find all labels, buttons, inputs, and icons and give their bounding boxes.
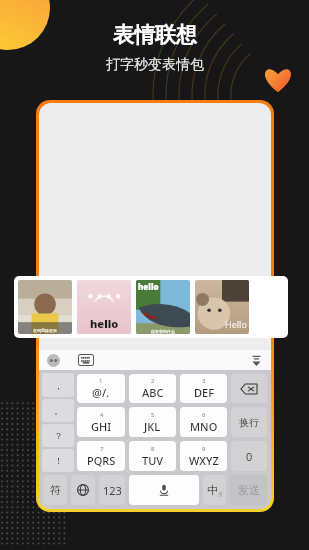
button[interactable]: ，	[42, 373, 74, 397]
button[interactable]: 123	[99, 475, 125, 505]
button[interactable]: Collapse	[250, 354, 263, 367]
staticText: 123	[103, 483, 122, 498]
button[interactable]: 7	[77, 441, 125, 471]
button[interactable]: 4	[77, 407, 125, 437]
staticText: ！	[54, 455, 63, 466]
button[interactable]: 。	[42, 399, 74, 422]
button[interactable]: hello	[136, 280, 190, 334]
staticText: Hello	[225, 318, 247, 330]
button[interactable]: Keyboard	[78, 354, 94, 366]
staticText: @/.	[92, 385, 110, 400]
button[interactable]: Hello	[195, 280, 249, 334]
button[interactable]: Voice	[46, 290, 66, 310]
staticText: PQRS	[87, 453, 116, 468]
staticText: hello	[138, 281, 159, 292]
button[interactable]: Panda	[47, 354, 60, 367]
staticText: 4	[100, 411, 104, 419]
button[interactable]: 6	[180, 407, 227, 437]
staticText: JKL	[144, 419, 161, 434]
staticText: 。	[54, 405, 63, 416]
button[interactable]: 2	[129, 374, 176, 403]
staticText: 中	[207, 483, 218, 497]
button[interactable]: ？	[42, 424, 74, 447]
button[interactable]: 1	[77, 374, 125, 403]
staticText: 符	[50, 483, 61, 497]
staticText: DEF	[194, 385, 214, 400]
staticText: 表情联想	[113, 22, 197, 48]
staticText: ，	[54, 380, 63, 391]
button[interactable]: Language	[71, 475, 95, 505]
staticText: TUV	[142, 453, 164, 468]
staticText: 3	[202, 377, 206, 385]
staticText: 换行	[239, 416, 259, 429]
button[interactable]: Add	[244, 291, 262, 309]
button[interactable]: 0	[231, 441, 267, 471]
button[interactable]: Emoji	[219, 291, 237, 309]
staticText: 7	[100, 445, 104, 453]
button[interactable]: 符	[43, 475, 67, 505]
button[interactable]: Voice input	[129, 475, 199, 505]
staticText: 在吗我妹发呆	[33, 328, 57, 333]
button[interactable]: hello	[77, 280, 131, 334]
button[interactable]: 9	[180, 441, 227, 471]
button[interactable]: 换行	[231, 407, 267, 437]
staticText: ？	[54, 430, 63, 441]
staticText: 0	[246, 449, 253, 464]
button[interactable]: 5	[129, 407, 176, 437]
staticText: 5	[151, 411, 155, 419]
staticText: 1	[99, 377, 103, 385]
button[interactable]: 3	[180, 374, 227, 403]
staticText: ABC	[142, 385, 164, 400]
staticText: 9	[202, 445, 206, 453]
button[interactable]: 中	[203, 475, 226, 505]
button[interactable]: ！	[42, 449, 74, 472]
button[interactable]: hello	[79, 289, 211, 311]
button[interactable]: 8	[129, 441, 176, 471]
staticText: 英	[218, 491, 223, 497]
staticText: MNO	[190, 419, 218, 434]
staticText: GHI	[91, 419, 112, 434]
staticText: 6	[202, 411, 206, 419]
staticText: 打字秒变表情包	[106, 56, 204, 74]
staticText: WXYZ	[189, 453, 219, 468]
staticText: 你在害怕什么	[151, 329, 175, 334]
button[interactable]: Delete	[231, 374, 267, 403]
button[interactable]: 发送	[230, 475, 267, 505]
button[interactable]: 在吗我妹发呆	[18, 280, 72, 334]
staticText: 8	[151, 445, 155, 453]
staticText: 2	[151, 377, 155, 385]
staticText: hello	[79, 293, 105, 308]
staticText: 发送	[238, 483, 260, 497]
staticText: hello	[90, 316, 119, 331]
